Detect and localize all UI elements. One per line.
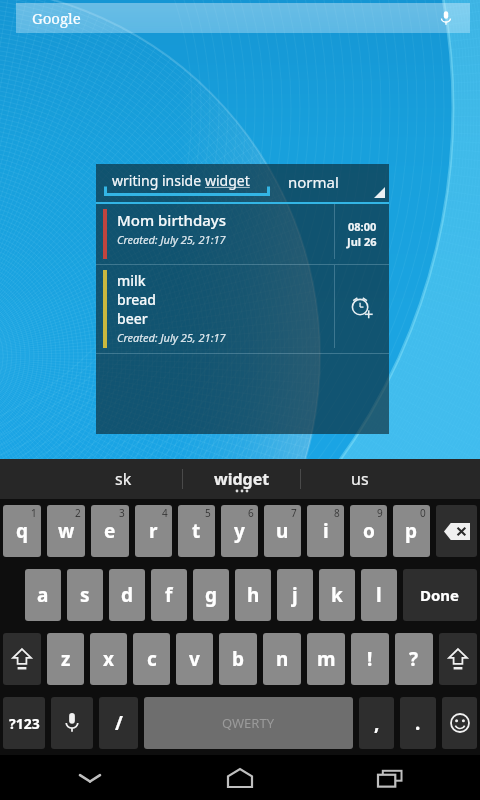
staticText: m: [317, 646, 336, 672]
staticText: s: [80, 582, 90, 608]
button[interactable]: milk: [96, 265, 389, 353]
staticText: ?: [409, 646, 419, 672]
button[interactable]: h: [235, 569, 271, 621]
staticText: y: [234, 518, 245, 544]
button[interactable]: .: [400, 697, 436, 749]
button[interactable]: normal: [270, 164, 389, 202]
staticText: a: [37, 582, 49, 608]
staticText: Created: July 25, 21:17: [117, 232, 226, 247]
button[interactable]: Backspace: [436, 505, 477, 557]
button[interactable]: j: [277, 569, 313, 621]
button[interactable]: s: [67, 569, 103, 621]
button[interactable]: Shift: [439, 633, 477, 685]
staticText: widget: [205, 171, 250, 190]
button[interactable]: k: [319, 569, 355, 621]
button[interactable]: Recents: [330, 755, 450, 800]
staticText: r: [149, 518, 158, 544]
staticText: q: [16, 518, 29, 544]
staticText: n: [276, 646, 289, 672]
button[interactable]: n: [263, 633, 301, 685]
staticText: i: [323, 518, 329, 544]
staticText: j: [292, 582, 298, 608]
button[interactable]: /: [99, 697, 138, 749]
button[interactable]: z: [47, 633, 84, 685]
button[interactable]: y: [221, 505, 258, 557]
staticText: c: [147, 646, 157, 672]
button[interactable]: l: [361, 569, 397, 621]
button[interactable]: !: [351, 633, 389, 685]
button[interactable]: us: [301, 459, 418, 499]
button[interactable]: m: [307, 633, 345, 685]
other: Voice search: [438, 10, 454, 26]
staticText: Created: July 25, 21:17: [117, 330, 226, 345]
button[interactable]: i: [307, 505, 344, 557]
button[interactable]: widget: [183, 459, 300, 499]
staticText: Google: [32, 8, 81, 28]
button[interactable]: e: [91, 505, 129, 557]
button[interactable]: sk: [65, 459, 182, 499]
staticText: us: [351, 468, 369, 490]
staticText: .: [415, 710, 421, 736]
staticText: 7: [291, 506, 297, 520]
staticText: o: [363, 518, 375, 544]
button[interactable]: ?: [395, 633, 433, 685]
button[interactable]: Done: [403, 569, 477, 621]
button[interactable]: t: [178, 505, 215, 557]
button[interactable]: Mom birthdays: [96, 204, 389, 264]
staticText: milk: [117, 271, 146, 290]
staticText: 5: [205, 506, 211, 520]
staticText: ,: [374, 710, 380, 736]
staticText: p: [405, 518, 418, 544]
staticText: z: [61, 646, 71, 672]
staticText: l: [376, 582, 382, 608]
button[interactable]: d: [109, 569, 145, 621]
staticText: 9: [377, 506, 383, 520]
staticText: h: [247, 582, 260, 608]
button[interactable]: a: [25, 569, 61, 621]
staticText: writing inside: [112, 171, 205, 190]
staticText: 2: [75, 506, 81, 520]
button[interactable]: g: [193, 569, 229, 621]
button[interactable]: x: [90, 633, 127, 685]
staticText: bread: [117, 290, 157, 309]
staticText: /: [115, 710, 123, 736]
staticText: w: [58, 518, 75, 544]
staticText: 1: [31, 506, 37, 520]
button[interactable]: w: [47, 505, 85, 557]
button[interactable]: Emoji: [442, 697, 477, 749]
button[interactable]: u: [264, 505, 301, 557]
staticText: b: [232, 646, 245, 672]
button[interactable]: ,: [359, 697, 394, 749]
button[interactable]: b: [219, 633, 257, 685]
button[interactable]: Hide keyboard: [30, 755, 150, 800]
staticText: x: [103, 646, 114, 672]
button[interactable]: Home: [180, 755, 300, 800]
staticText: 0: [420, 506, 426, 520]
staticText: f: [165, 582, 173, 608]
button[interactable]: Google: [16, 3, 470, 33]
button[interactable]: q: [3, 505, 41, 557]
staticText: g: [205, 582, 218, 608]
staticText: normal: [288, 172, 339, 192]
staticText: 08:00: [348, 219, 377, 234]
button[interactable]: Shift: [3, 633, 41, 685]
staticText: v: [189, 646, 200, 672]
staticText: sk: [115, 468, 132, 490]
staticText: d: [121, 582, 134, 608]
button[interactable]: writing inside: [104, 167, 270, 196]
button[interactable]: o: [350, 505, 387, 557]
button[interactable]: ?123: [3, 697, 45, 749]
button[interactable]: QWERTY: [144, 697, 353, 749]
button[interactable]: Add alarm: [350, 297, 374, 321]
button[interactable]: Voice input: [51, 697, 93, 749]
staticText: QWERTY: [222, 714, 275, 732]
button[interactable]: c: [133, 633, 170, 685]
button[interactable]: p: [393, 505, 430, 557]
staticText: 4: [162, 506, 168, 520]
staticText: beer: [117, 309, 148, 328]
button[interactable]: r: [135, 505, 172, 557]
staticText: widget: [214, 468, 270, 490]
button[interactable]: f: [151, 569, 187, 621]
button[interactable]: v: [176, 633, 213, 685]
staticText: k: [331, 582, 343, 608]
